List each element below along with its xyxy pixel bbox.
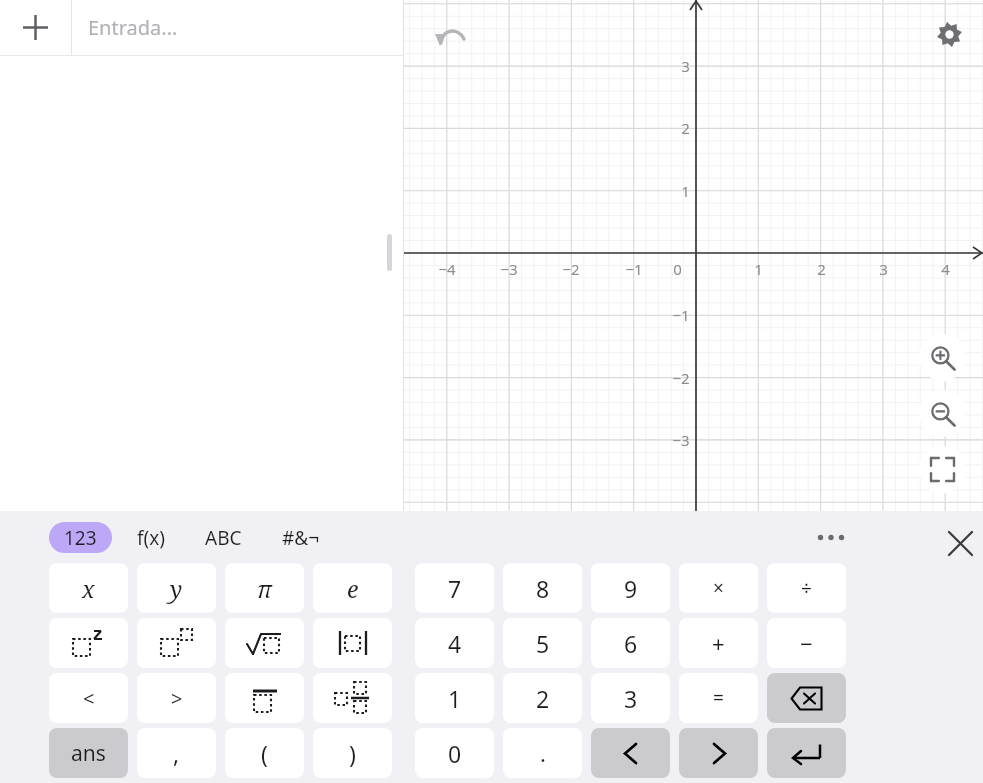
button[interactable]: f(x)	[125, 522, 177, 553]
button[interactable]: pi	[225, 563, 304, 613]
button[interactable]: 8	[503, 563, 582, 613]
button[interactable]: Undo	[432, 18, 468, 54]
button[interactable]: Move right	[679, 728, 758, 778]
button[interactable]: square	[49, 618, 128, 668]
button[interactable]: 9	[591, 563, 670, 613]
staticText: y	[170, 573, 183, 604]
staticText: 1	[448, 683, 462, 714]
button[interactable]: greater than	[137, 673, 216, 723]
staticText: 7	[448, 573, 462, 604]
button[interactable]: Backspace	[767, 673, 846, 723]
staticText: f(x)	[137, 525, 165, 551]
staticText: =	[713, 685, 724, 711]
staticText: Entrada...	[88, 14, 178, 41]
button[interactable]: Entrada...	[72, 0, 404, 55]
button[interactable]: 0	[415, 728, 494, 778]
staticText: −1	[672, 305, 690, 325]
button[interactable]: ÷	[767, 563, 846, 613]
staticText: 0	[448, 738, 462, 769]
button[interactable]: ,	[137, 728, 216, 778]
button[interactable]: =	[679, 673, 758, 723]
staticText: 2	[536, 683, 550, 714]
staticText: −3	[500, 259, 518, 279]
staticText: 123	[64, 525, 97, 551]
button[interactable]: Move left	[591, 728, 670, 778]
staticText: 8	[536, 573, 550, 604]
staticText: #&¬	[282, 525, 320, 551]
button[interactable]: square root	[225, 618, 304, 668]
button[interactable]: 7	[415, 563, 494, 613]
staticText: 4	[941, 259, 950, 279]
button[interactable]: (	[225, 728, 304, 778]
button[interactable]: ×	[679, 563, 758, 613]
button[interactable]: mixed number	[313, 673, 392, 723]
button[interactable]: )	[313, 728, 392, 778]
staticText: 9	[624, 573, 638, 604]
button[interactable]: y	[137, 563, 216, 613]
staticText: −4	[438, 259, 456, 279]
staticText: e	[347, 573, 359, 604]
button[interactable]: More options	[810, 523, 852, 551]
button[interactable]: 5	[503, 618, 582, 668]
staticText: 6	[624, 628, 638, 659]
staticText: .	[540, 738, 546, 768]
staticText: −1	[625, 259, 643, 279]
button[interactable]: Enter	[767, 728, 846, 778]
staticText: ABC	[205, 525, 242, 551]
staticText: ,	[173, 738, 180, 769]
button[interactable]: 3	[591, 673, 670, 723]
staticText: (	[261, 738, 268, 769]
staticText: π	[257, 573, 272, 604]
staticText: −3	[672, 430, 690, 450]
staticText: ÷	[801, 575, 812, 601]
staticText: ans	[71, 739, 106, 768]
staticText: 3	[681, 56, 690, 76]
button[interactable]: 123	[49, 522, 112, 553]
button[interactable]: absolute value	[313, 618, 392, 668]
staticText: −2	[672, 368, 690, 388]
staticText: ×	[713, 575, 724, 601]
button[interactable]: 2	[503, 673, 582, 723]
button[interactable]: Close keyboard	[938, 521, 982, 565]
button[interactable]: −	[767, 618, 846, 668]
staticText: 5	[536, 628, 550, 659]
button[interactable]: Fullscreen	[919, 446, 966, 493]
button[interactable]: Settings	[929, 14, 969, 54]
button[interactable]: e	[313, 563, 392, 613]
staticText: 0	[673, 259, 682, 279]
button[interactable]: ABC	[195, 522, 251, 553]
staticText: )	[349, 738, 356, 769]
staticText: x	[82, 573, 95, 604]
button[interactable]: .	[503, 728, 582, 778]
staticText: +	[712, 628, 725, 658]
staticText: 1	[754, 259, 763, 279]
staticText: >	[171, 685, 183, 712]
button[interactable]: Zoom in	[919, 334, 966, 381]
staticText: −	[800, 628, 813, 658]
button[interactable]: ans	[49, 728, 128, 778]
staticText: −2	[562, 259, 580, 279]
button[interactable]: 4	[415, 618, 494, 668]
button[interactable]: fraction	[225, 673, 304, 723]
button[interactable]: Add input row	[0, 0, 71, 55]
staticText: 3	[879, 259, 888, 279]
staticText: 2	[681, 118, 690, 138]
staticText: <	[83, 685, 95, 712]
button[interactable]: x	[49, 563, 128, 613]
staticText: 2	[817, 259, 826, 279]
button[interactable]: less than	[49, 673, 128, 723]
button[interactable]: #&¬	[273, 522, 329, 553]
button[interactable]: power	[137, 618, 216, 668]
staticText: 3	[624, 683, 638, 714]
staticText: 1	[681, 181, 690, 201]
button[interactable]: Zoom out	[919, 390, 966, 437]
button[interactable]: +	[679, 618, 758, 668]
staticText: 4	[448, 628, 462, 659]
button[interactable]: 1	[415, 673, 494, 723]
button[interactable]: 6	[591, 618, 670, 668]
